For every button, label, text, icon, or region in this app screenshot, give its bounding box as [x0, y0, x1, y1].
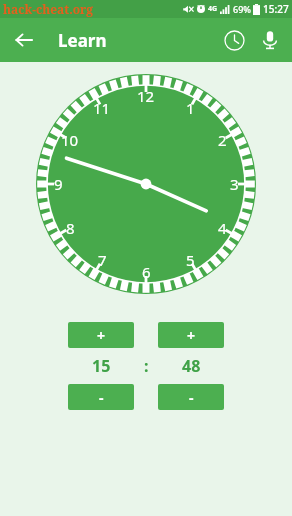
staticText: -	[189, 388, 194, 407]
staticText: -	[99, 388, 104, 407]
staticText: 9	[54, 174, 63, 194]
staticText: +	[187, 326, 196, 345]
staticText: 48	[182, 355, 201, 377]
button[interactable]: Decrease hours	[68, 384, 134, 410]
button[interactable]: Voice input	[254, 24, 286, 56]
staticText: 69%	[233, 3, 251, 15]
staticText: hack-cheat.org	[3, 1, 94, 17]
staticText: 2	[218, 130, 227, 150]
staticText: 15	[92, 355, 111, 377]
staticText: 3	[230, 174, 239, 194]
button[interactable]: Increase minutes	[158, 322, 224, 348]
staticText: 12	[137, 86, 155, 106]
staticText: Learn	[58, 29, 107, 52]
staticText: 4G	[208, 4, 218, 14]
staticText: 7	[98, 250, 107, 270]
staticText: 10	[61, 130, 79, 150]
staticText: 8	[66, 218, 75, 238]
button[interactable]: Increase hours	[68, 322, 134, 348]
staticText: :	[144, 355, 149, 377]
staticText: 6	[142, 262, 151, 282]
staticText: 5	[186, 250, 195, 270]
staticText: 15:27	[263, 2, 289, 16]
staticText: 11	[93, 98, 111, 118]
button[interactable]: Back	[8, 24, 40, 56]
staticText: +	[97, 326, 106, 345]
staticText: 4	[218, 218, 227, 238]
button[interactable]: Clock	[218, 24, 250, 56]
staticText: 1	[186, 98, 195, 118]
button[interactable]: Decrease minutes	[158, 384, 224, 410]
